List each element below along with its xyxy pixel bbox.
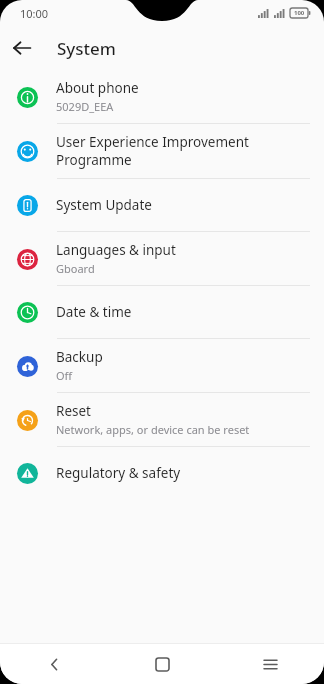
button[interactable]: Back (0, 644, 108, 684)
button[interactable]: System Update (0, 179, 324, 231)
button[interactable]: Regulatory & safety (0, 447, 324, 499)
staticText: 5029D_EEA (56, 99, 114, 114)
staticText: Languages & input (56, 241, 176, 259)
button[interactable]: User Experience Improvement Programme (0, 124, 324, 178)
staticText: Date & time (56, 303, 132, 321)
staticText: System Update (56, 196, 152, 214)
button[interactable]: Reset (0, 393, 324, 446)
staticText: Off (56, 368, 73, 383)
button[interactable]: Backup (0, 339, 324, 392)
staticText: Reset (56, 402, 91, 420)
staticText: About phone (56, 79, 139, 97)
staticText: Backup (56, 348, 103, 366)
staticText: Regulatory & safety (56, 464, 181, 482)
button[interactable]: Date & time (0, 286, 324, 338)
staticText: Gboard (56, 261, 95, 276)
button[interactable]: About phone (0, 70, 324, 123)
staticText: System (57, 37, 116, 60)
staticText: 10:00 (20, 6, 49, 21)
button[interactable]: Languages & input (0, 232, 324, 285)
button[interactable]: Back (0, 26, 44, 70)
staticText: 100 (294, 9, 305, 17)
staticText: User Experience Improvement Programme (56, 133, 310, 169)
staticText: Network, apps, or device can be reset (56, 422, 250, 437)
button[interactable]: Home (108, 644, 216, 684)
button[interactable]: Recent apps (216, 644, 324, 684)
